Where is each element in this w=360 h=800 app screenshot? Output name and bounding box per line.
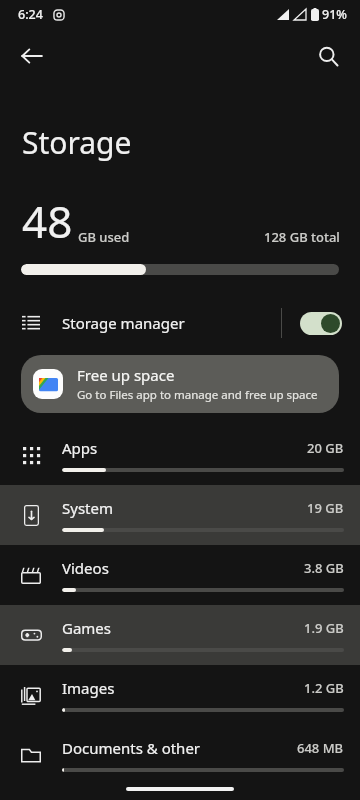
staticText: 1.9 GB bbox=[304, 619, 344, 637]
staticText: Go to Files app to manage and free up sp… bbox=[77, 387, 318, 403]
staticText: 6:24 bbox=[18, 6, 43, 23]
staticText: Videos bbox=[62, 558, 304, 578]
staticText: 19 GB bbox=[307, 499, 344, 517]
button[interactable]: Storage manager toggle bbox=[300, 312, 342, 335]
staticText: Apps bbox=[62, 438, 307, 458]
staticText: Free up space bbox=[77, 365, 175, 385]
staticText: 48 bbox=[22, 191, 73, 251]
staticText: 20 GB bbox=[307, 439, 344, 457]
button[interactable]: Videos bbox=[0, 545, 360, 605]
staticText: 648 MB bbox=[297, 739, 344, 757]
staticText: Storage manager bbox=[62, 313, 281, 333]
button[interactable]: System bbox=[0, 485, 360, 545]
staticText: System bbox=[62, 498, 307, 518]
staticText: 128 GB total bbox=[264, 228, 340, 246]
staticText: Images bbox=[62, 678, 304, 698]
staticText: Documents & other bbox=[62, 738, 297, 758]
button[interactable]: Free up space bbox=[21, 355, 339, 413]
staticText: GB used bbox=[78, 228, 130, 246]
staticText: Storage bbox=[22, 122, 132, 163]
button[interactable]: Apps bbox=[0, 425, 360, 485]
button[interactable]: Images bbox=[0, 665, 360, 725]
button[interactable]: Back bbox=[8, 32, 56, 80]
button[interactable]: Documents & other bbox=[0, 725, 360, 785]
staticText: 3.8 GB bbox=[304, 559, 344, 577]
button[interactable]: Games bbox=[0, 605, 360, 665]
staticText: Games bbox=[62, 618, 304, 638]
staticText: 1.2 GB bbox=[304, 679, 344, 697]
button[interactable]: Search bbox=[304, 32, 352, 80]
button[interactable]: Storage manager bbox=[0, 299, 360, 347]
staticText: 91% bbox=[322, 6, 347, 23]
